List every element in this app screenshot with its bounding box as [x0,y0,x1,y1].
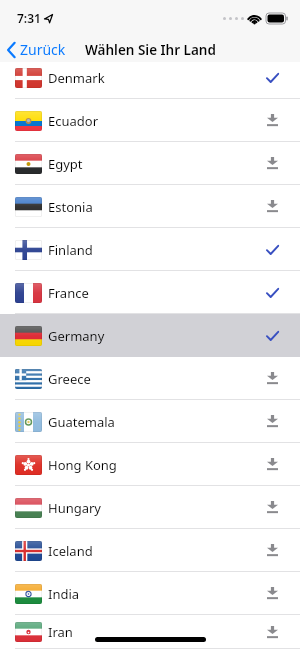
staticText: Estonia [48,198,93,216]
button[interactable]: Ecuador [0,99,300,142]
staticText: Wählen Sie Ihr Land [85,41,216,59]
staticText: Finland [48,241,93,259]
button[interactable]: India [0,572,300,615]
staticText: Denmark [48,69,105,87]
staticText: 7:31 [17,10,41,26]
staticText: Zurück [20,40,66,59]
button[interactable]: Guatemala [0,400,300,443]
staticText: Germany [48,327,105,345]
button[interactable]: Estonia [0,185,300,228]
button[interactable]: Iran [0,615,300,649]
staticText: Hong Kong [48,456,117,474]
staticText: India [48,585,80,603]
button[interactable]: France [0,271,300,314]
staticText: Hungary [48,499,101,517]
button[interactable]: Germany [0,314,300,357]
staticText: Iran [48,623,73,641]
button[interactable]: Iceland [0,529,300,572]
button[interactable]: Greece [0,357,300,400]
staticText: Egypt [48,155,83,173]
button[interactable]: Hong Kong [0,443,300,486]
button[interactable]: Denmark [0,56,300,99]
button[interactable]: Zurück [7,40,66,59]
staticText: Iceland [48,542,93,560]
staticText: France [48,284,89,302]
button[interactable]: Hungary [0,486,300,529]
button[interactable]: Finland [0,228,300,271]
staticText: Greece [48,370,91,388]
staticText: Guatemala [48,413,115,431]
button[interactable]: Egypt [0,142,300,185]
staticText: Ecuador [48,112,99,130]
